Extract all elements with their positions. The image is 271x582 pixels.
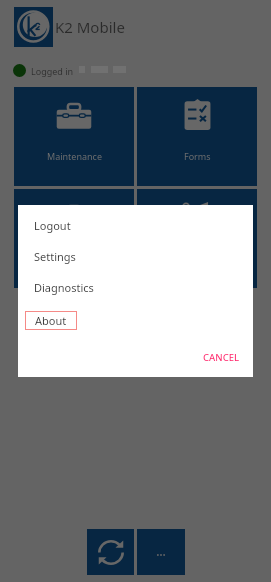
button[interactable]: CANCEL xyxy=(188,342,253,373)
button[interactable]: More options xyxy=(137,529,185,575)
staticText: Diagnostics xyxy=(34,280,94,295)
button[interactable]: About xyxy=(18,303,253,334)
button[interactable]: Diagnostics xyxy=(18,272,253,303)
button[interactable]: Assets xyxy=(14,189,134,288)
button[interactable]: Logout xyxy=(18,210,253,241)
button[interactable]: Forms xyxy=(137,87,257,186)
staticText: Settings xyxy=(34,249,76,264)
staticText: Logout xyxy=(34,218,71,233)
staticText: About xyxy=(35,313,67,328)
staticText: Logged in xyxy=(31,65,74,77)
button[interactable]: Photos xyxy=(137,189,257,288)
staticText: Maintenance xyxy=(47,150,102,162)
staticText: Assets xyxy=(60,252,88,264)
button[interactable]: Sync xyxy=(87,529,134,575)
button[interactable]: Settings xyxy=(18,241,253,272)
button[interactable]: Maintenance xyxy=(14,87,134,186)
staticText: CANCEL xyxy=(203,351,240,364)
staticText: Forms xyxy=(184,150,211,162)
staticText: K2 Mobile xyxy=(55,17,125,37)
